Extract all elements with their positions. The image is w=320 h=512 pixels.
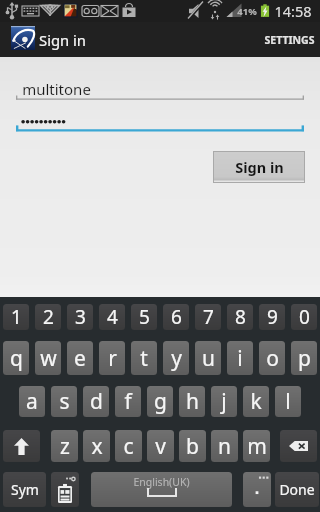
staticText: m	[247, 432, 267, 461]
staticText: v	[155, 432, 166, 461]
staticText: d	[90, 387, 103, 416]
staticText: 14:58	[274, 1, 312, 21]
staticText: Sym	[11, 480, 39, 499]
staticText: 1	[11, 304, 22, 330]
button[interactable]: h	[179, 386, 205, 417]
button[interactable]: Done	[275, 472, 319, 507]
button[interactable]: 6	[163, 304, 189, 330]
button[interactable]: z	[51, 430, 78, 462]
staticText: w	[40, 344, 57, 373]
button[interactable]: SETTINGS	[255, 24, 320, 56]
button[interactable]: 3	[67, 304, 93, 330]
staticText: 7	[203, 304, 214, 330]
button[interactable]: r	[99, 341, 125, 375]
button[interactable]: i	[227, 341, 253, 375]
button[interactable]: k	[243, 386, 269, 417]
staticText: r	[108, 344, 117, 373]
staticText: English(UK)	[133, 475, 190, 489]
button[interactable]: Backspace	[280, 430, 317, 462]
staticText: u	[202, 344, 215, 373]
button[interactable]: 8	[227, 304, 253, 330]
button[interactable]: a	[19, 386, 45, 417]
staticText: p	[298, 344, 311, 373]
button[interactable]: 7	[195, 304, 221, 330]
button[interactable]: p	[291, 341, 317, 375]
button[interactable]: d	[83, 386, 109, 417]
staticText: l	[285, 387, 291, 416]
button[interactable]: s	[51, 386, 77, 417]
staticText: a	[26, 387, 38, 416]
button[interactable]: j	[211, 386, 237, 417]
staticText: o	[266, 344, 279, 373]
staticText: n	[218, 432, 231, 461]
staticText: 3	[75, 304, 86, 330]
button[interactable]: l	[275, 386, 301, 417]
button[interactable]: m	[243, 430, 270, 462]
staticText: 0	[299, 304, 310, 330]
staticText: q	[10, 344, 23, 373]
staticText: multitone	[22, 79, 91, 99]
staticText: Sign in	[235, 157, 284, 177]
button[interactable]: v	[147, 430, 174, 462]
staticText: t	[140, 344, 148, 373]
staticText: 6	[171, 304, 182, 330]
staticText: s	[59, 387, 70, 416]
button[interactable]: o	[259, 341, 285, 375]
staticText: 41%	[237, 5, 257, 18]
button[interactable]: Space	[91, 472, 232, 507]
staticText: f	[124, 387, 132, 416]
button[interactable]: 9	[259, 304, 285, 330]
button[interactable]: g	[147, 386, 173, 417]
staticText: j	[221, 387, 227, 416]
staticText: 4	[107, 304, 118, 330]
staticText: SETTINGS	[264, 33, 315, 47]
button[interactable]: b	[179, 430, 206, 462]
button[interactable]: 2	[35, 304, 61, 330]
staticText: 2	[43, 304, 54, 330]
button[interactable]: Clipboard	[51, 472, 79, 507]
staticText: y	[171, 344, 182, 373]
staticText: x	[91, 432, 103, 461]
staticText: 9	[267, 304, 278, 330]
button[interactable]: n	[211, 430, 238, 462]
staticText: Sign in	[39, 30, 86, 50]
staticText: h	[186, 387, 199, 416]
button[interactable]: 1	[3, 304, 29, 330]
staticText: c	[123, 432, 134, 461]
button[interactable]: e	[67, 341, 93, 375]
button[interactable]: w	[35, 341, 61, 375]
button[interactable]: f	[115, 386, 141, 417]
button[interactable]: Period	[243, 472, 271, 507]
staticText: i	[237, 344, 243, 373]
staticText: z	[60, 432, 70, 461]
button[interactable]: c	[115, 430, 142, 462]
staticText: g	[154, 387, 167, 416]
staticText: 8	[235, 304, 246, 330]
button[interactable]: 5	[131, 304, 157, 330]
staticText: 5	[139, 304, 150, 330]
button[interactable]: Shift	[3, 430, 40, 462]
staticText: e	[74, 344, 86, 373]
button[interactable]: u	[195, 341, 221, 375]
button[interactable]: 4	[99, 304, 125, 330]
staticText: k	[250, 387, 262, 416]
button[interactable]	[16, 107, 304, 133]
button[interactable]: t	[131, 341, 157, 375]
button[interactable]: multitone	[16, 76, 304, 102]
button[interactable]: 0	[291, 304, 317, 330]
button[interactable]: Sign in	[214, 152, 304, 182]
button[interactable]: q	[3, 341, 29, 375]
button[interactable]: x	[83, 430, 110, 462]
staticText: b	[186, 432, 199, 461]
button[interactable]: Sym	[3, 472, 46, 507]
staticText: Done	[279, 480, 315, 499]
button[interactable]: y	[163, 341, 189, 375]
